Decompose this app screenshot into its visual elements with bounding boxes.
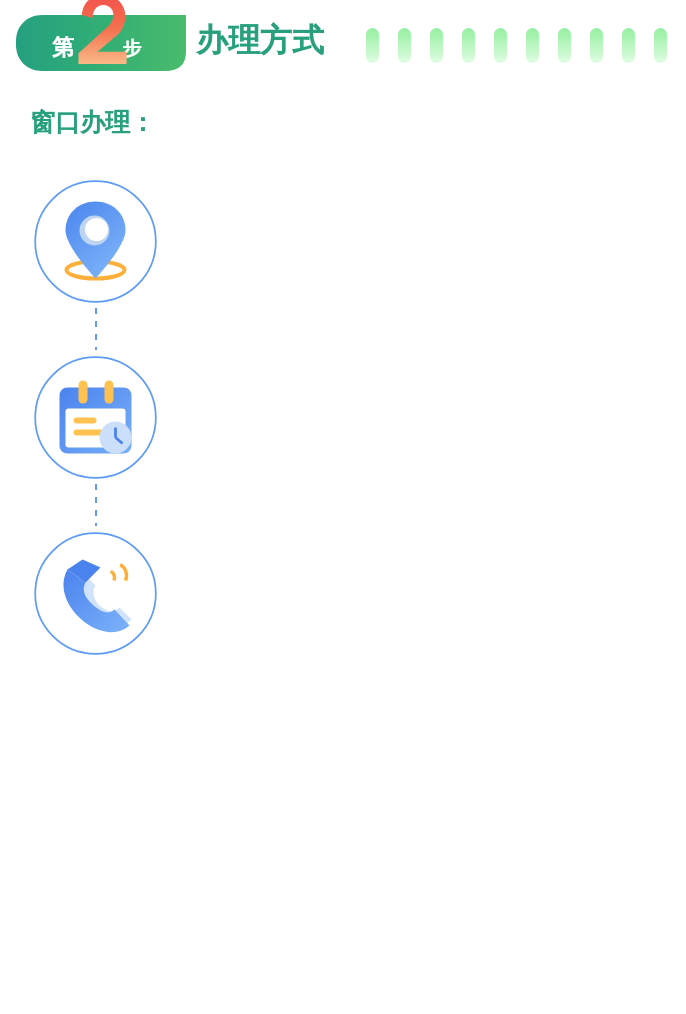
staticText: 窗口办理： [30,107,155,138]
staticText: 办理方式 [196,20,324,60]
staticText: 第 [52,34,74,62]
button[interactable]: 办事地点 [34,180,157,303]
button[interactable]: 办理时间 [34,356,157,479]
button[interactable]: 咨询电话 [34,532,157,655]
button[interactable]: 第 [16,15,186,71]
staticText: 步 [122,37,141,61]
